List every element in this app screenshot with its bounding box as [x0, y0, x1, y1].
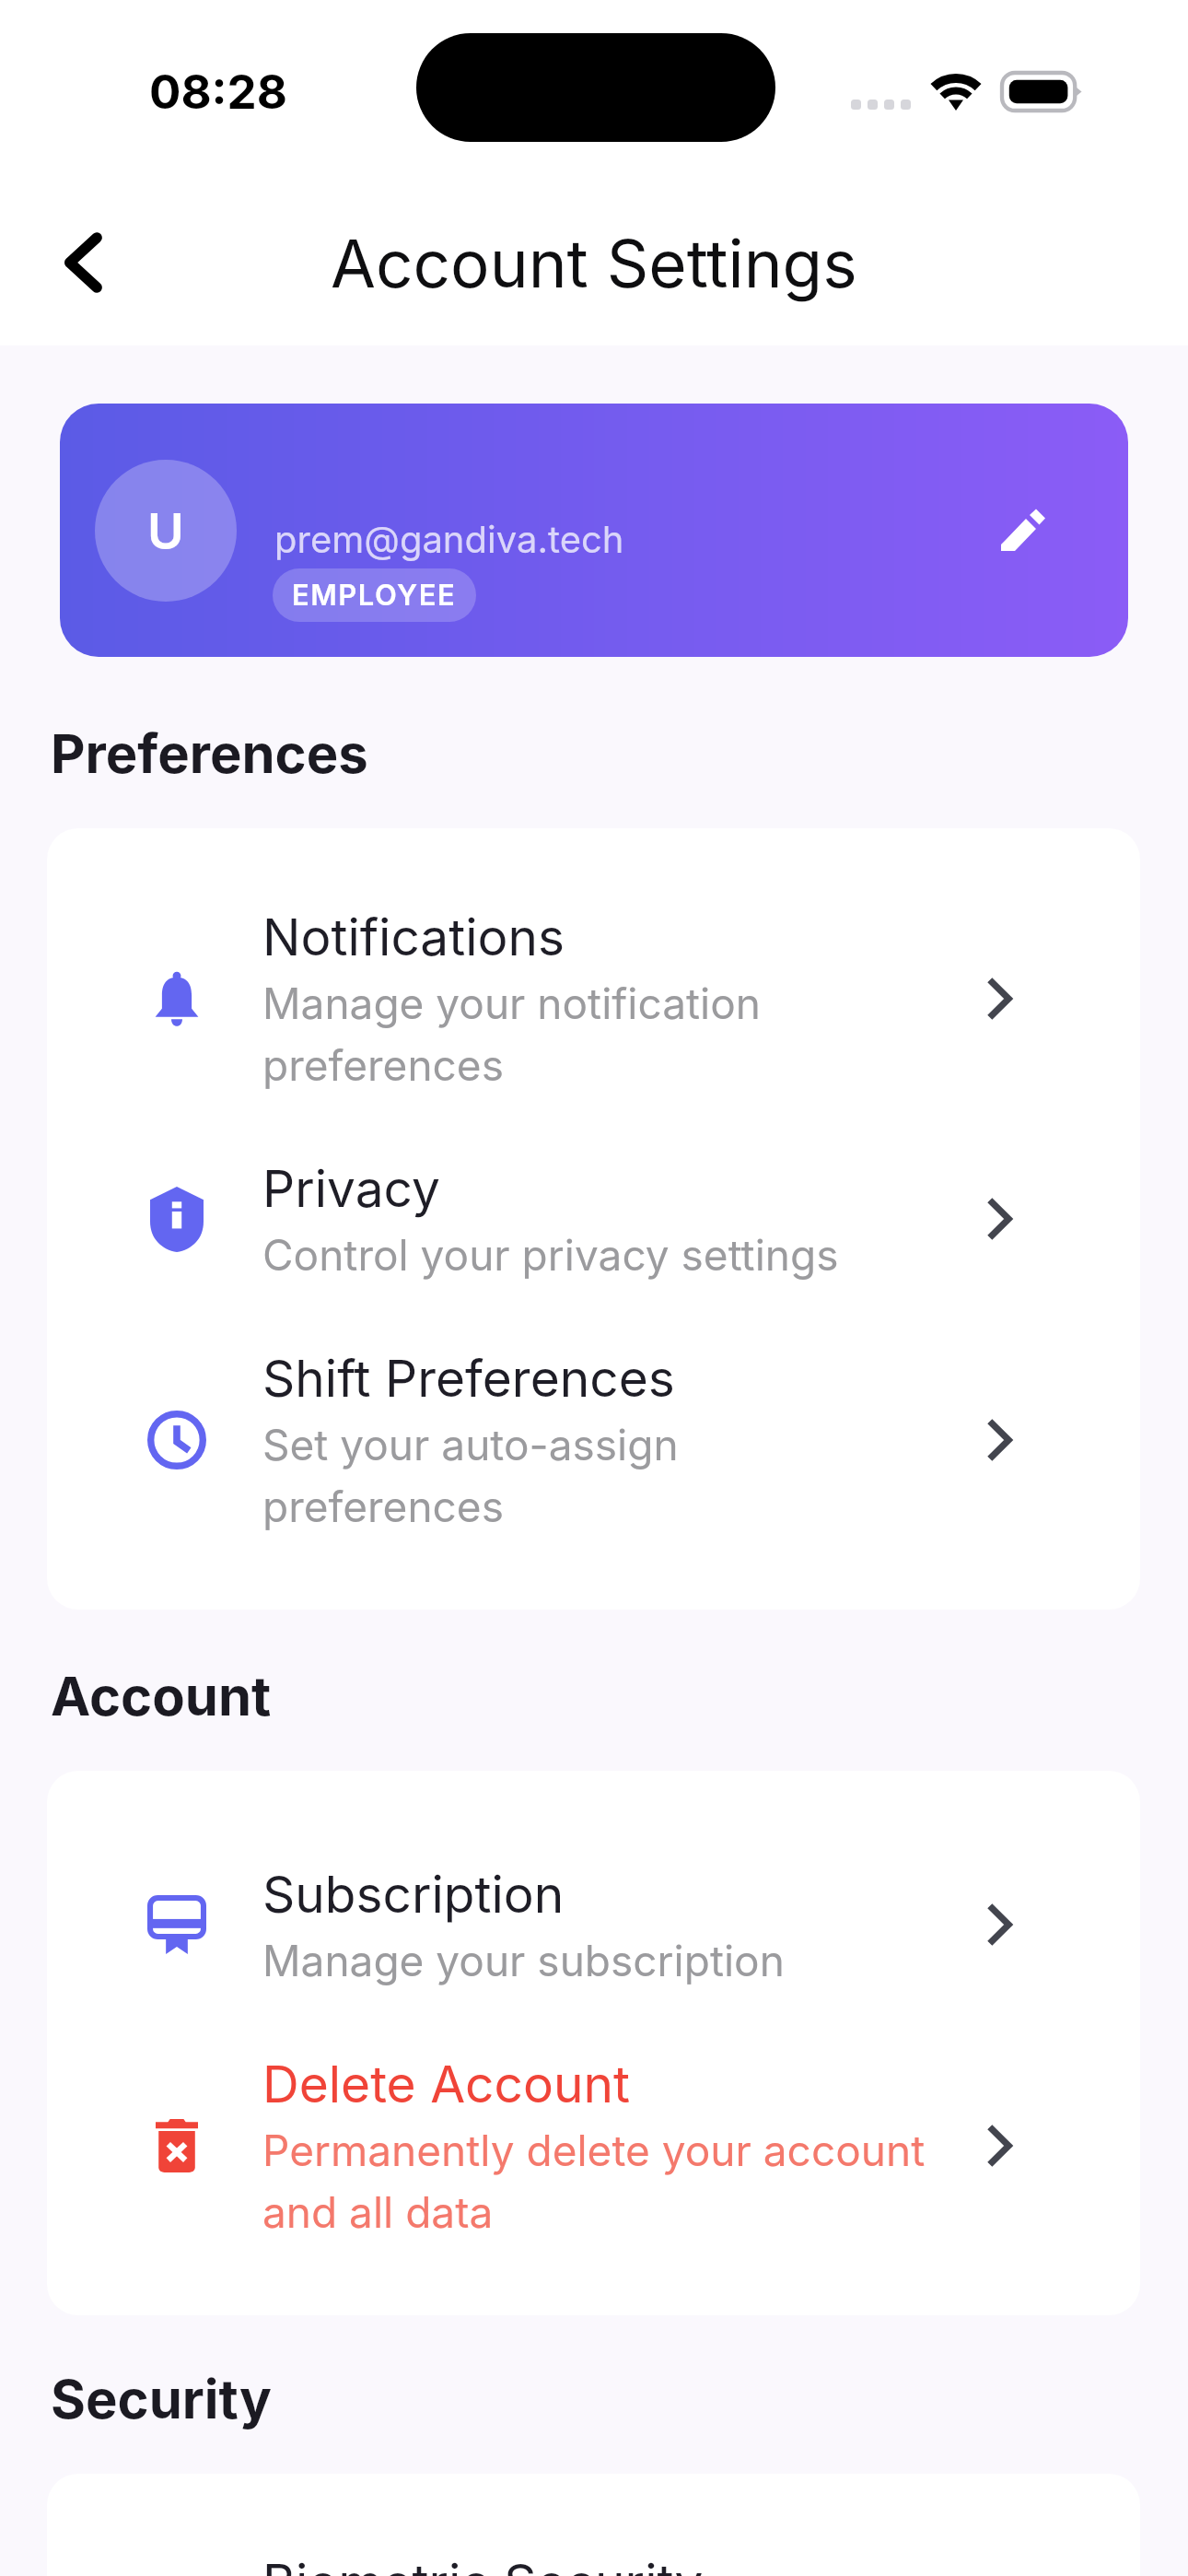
staticText: Shift Preferences — [262, 1342, 675, 1411]
staticText: Account — [51, 1664, 272, 1728]
staticText: EMPLOYEE — [292, 578, 457, 613]
staticText: Account Settings — [331, 224, 857, 303]
button[interactable]: Edit profile — [980, 489, 1065, 574]
button[interactable]: Back — [41, 220, 125, 305]
button[interactable]: Privacy — [47, 1124, 1140, 1314]
button[interactable]: Shift Preferences — [47, 1314, 1140, 1565]
button[interactable]: U — [60, 404, 1128, 657]
staticText: Notifications — [262, 901, 565, 969]
staticText: Control your privacy settings — [262, 1221, 839, 1282]
staticText: prem@gandiva.tech — [274, 517, 624, 561]
staticText: Biometric Security — [262, 2547, 704, 2576]
staticText: Permanently delete your account and all … — [262, 2116, 927, 2240]
staticText: Privacy — [262, 1153, 440, 1221]
button[interactable]: Subscription — [47, 1830, 1140, 2020]
staticText: Subscription — [262, 1858, 565, 1926]
staticText: 08:28 — [149, 64, 287, 121]
staticText: Security — [51, 2367, 272, 2431]
button[interactable]: Notifications — [47, 872, 1140, 1124]
button[interactable]: Delete Account — [47, 2020, 1140, 2271]
staticText: Manage your subscription — [262, 1926, 785, 1988]
staticText: Set your auto-assign preferences — [262, 1411, 927, 1534]
staticText: Delete Account — [262, 2048, 630, 2116]
staticText: U — [147, 501, 184, 561]
staticText: Manage your notification preferences — [262, 969, 927, 1093]
button[interactable]: Biometric Security — [47, 2518, 1140, 2576]
staticText: Preferences — [51, 721, 368, 786]
